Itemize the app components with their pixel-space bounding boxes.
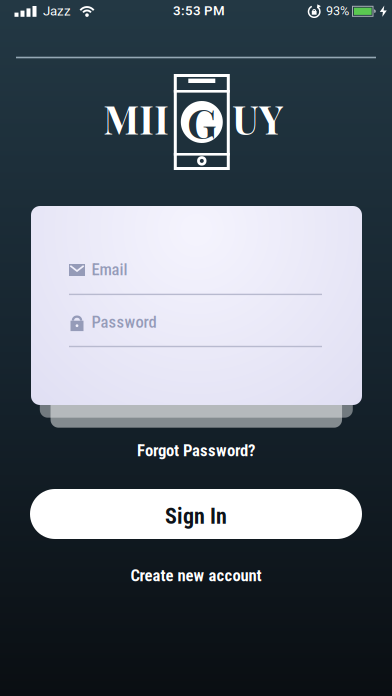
- staticText: 93%: [326, 4, 349, 18]
- staticText: Jazz: [43, 3, 71, 19]
- button[interactable]: Email: [31, 261, 362, 279]
- button[interactable]: Password: [31, 314, 362, 332]
- button[interactable]: Sign In: [30, 489, 362, 539]
- staticText: G: [187, 95, 216, 149]
- button[interactable]: Forgot Password?: [137, 441, 255, 460]
- staticText: Sign In: [165, 503, 227, 529]
- staticText: Password: [91, 312, 156, 332]
- staticText: Create new account: [130, 566, 261, 585]
- staticText: 3:53 PM: [173, 3, 225, 19]
- staticText: UY: [232, 93, 283, 144]
- button[interactable]: Create new account: [130, 566, 261, 585]
- staticText: MII: [103, 93, 169, 144]
- staticText: Email: [91, 260, 127, 279]
- staticText: Forgot Password?: [137, 441, 255, 460]
